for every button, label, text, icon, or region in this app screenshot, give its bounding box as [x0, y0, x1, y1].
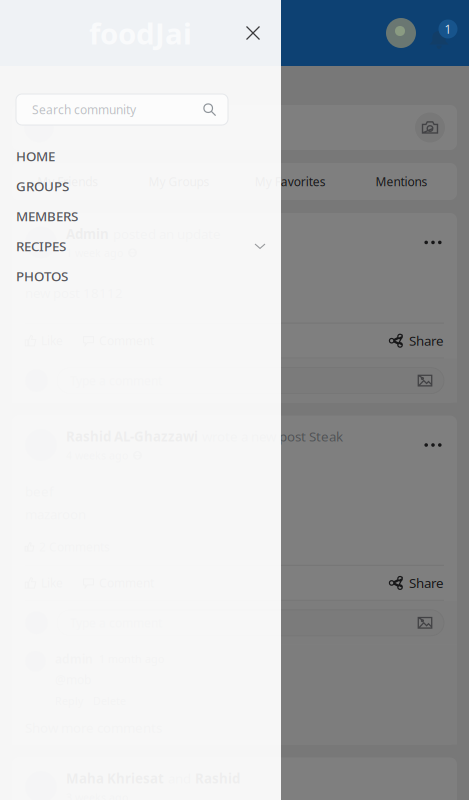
staticText: Maha Khriesat: [66, 769, 164, 787]
button[interactable]: Close menu: [238, 18, 268, 48]
staticText: Admin: [66, 225, 109, 243]
button[interactable]: Share: [389, 332, 444, 349]
button[interactable]: MEMBERS: [0, 201, 281, 231]
button[interactable]: Type a comment: [57, 610, 444, 636]
button[interactable]: More options: [422, 436, 444, 454]
button[interactable]: Search community: [16, 94, 228, 125]
button[interactable]: Notifications: [422, 14, 456, 52]
button[interactable]: HOME: [0, 141, 281, 171]
button[interactable]: My Friends: [12, 163, 123, 200]
staticText: wrote a new post Steak: [202, 428, 343, 445]
button[interactable]: RECIPES: [0, 231, 281, 261]
button[interactable]: Type a comment: [57, 368, 444, 394]
staticText: Share: [409, 574, 444, 592]
button[interactable]: GROUPS: [0, 171, 281, 201]
button[interactable]: Share: [389, 574, 444, 592]
staticText: My Friends: [37, 173, 98, 189]
staticText: RECIPES: [16, 237, 66, 255]
button[interactable]: More options: [422, 233, 444, 251]
button[interactable]: Mentions: [346, 163, 457, 200]
staticText: My Favorites: [255, 173, 326, 189]
staticText: Search community: [32, 101, 136, 117]
button[interactable]: Profile: [386, 18, 416, 48]
staticText: Rashid AL-Ghazzawi: [66, 428, 198, 445]
staticText: MEMBERS: [16, 207, 78, 225]
button[interactable]: Add photo: [415, 112, 445, 142]
button[interactable]: My Favorites: [234, 163, 346, 200]
staticText: HOME: [16, 147, 55, 165]
staticText: Share: [409, 332, 444, 349]
staticText: GROUPS: [16, 177, 69, 195]
staticText: Rashid: [195, 769, 240, 787]
staticText: 1: [444, 21, 451, 37]
staticText: foodJai: [89, 13, 192, 52]
staticText: PHOTOS: [16, 267, 68, 285]
button[interactable]: PHOTOS: [0, 261, 281, 291]
staticText: Mentions: [375, 173, 427, 189]
